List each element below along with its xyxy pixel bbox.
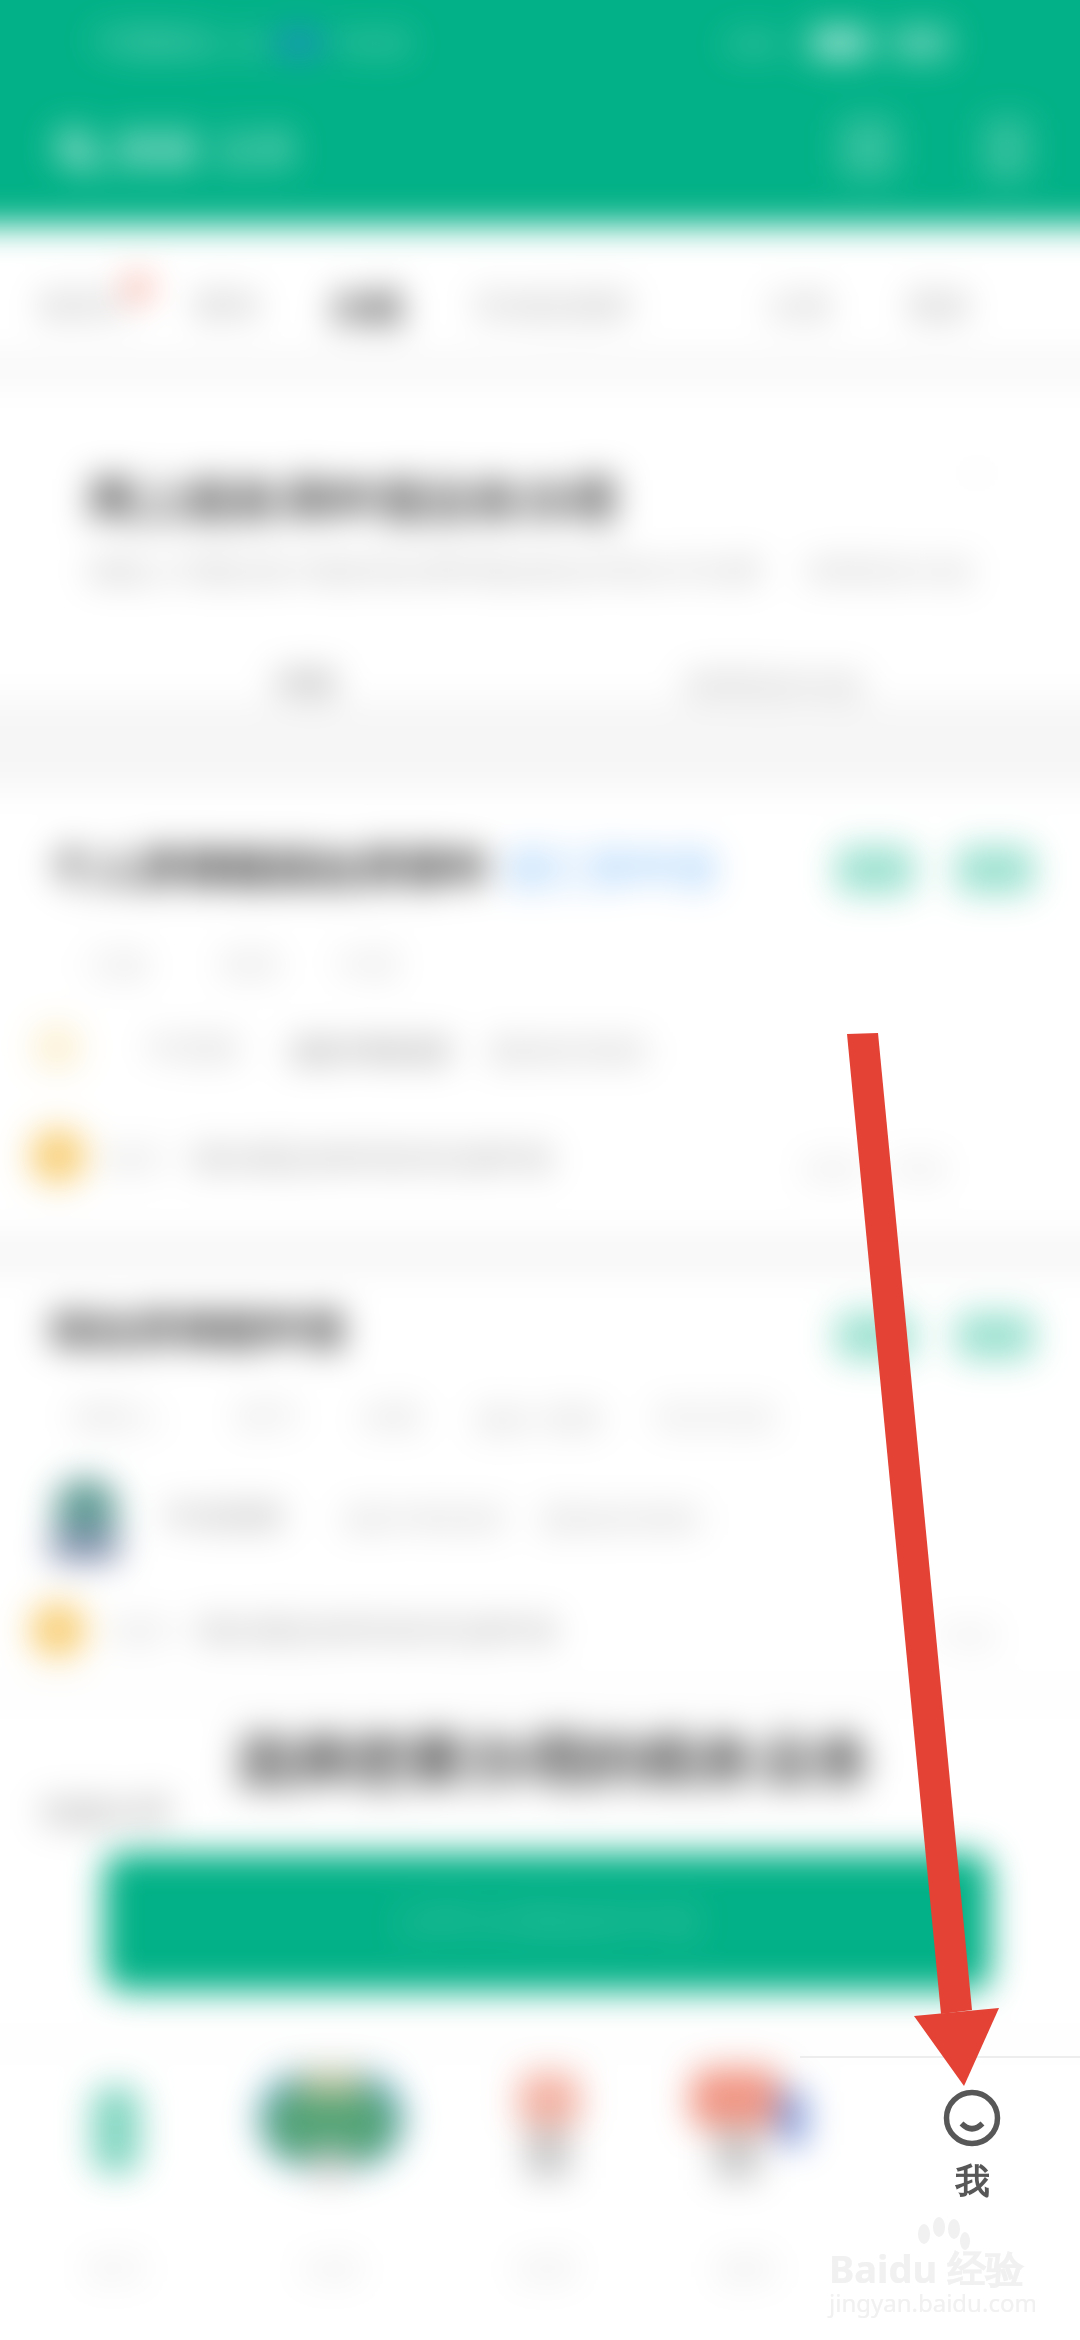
staticText: 编辑	[849, 1320, 901, 1353]
button[interactable]: 查看 详情	[796, 1142, 952, 1195]
button[interactable]: 更多	[902, 280, 978, 332]
staticText: 详情	[274, 664, 336, 703]
staticText: 快捷办理	[42, 1792, 170, 1832]
staticText: 2021年03月	[290, 1030, 453, 1071]
staticText: 提交	[969, 1320, 1021, 1353]
staticText: 业务	[215, 124, 299, 177]
staticText: 编辑	[849, 854, 901, 887]
button[interactable]: 详情	[268, 658, 342, 709]
button[interactable]	[648, 2045, 864, 2305]
staticText: 首页汇	[38, 286, 134, 326]
button[interactable]: 我	[864, 2046, 1080, 2246]
staticText: 10:25	[333, 22, 410, 63]
staticText: 度汇算申报	[506, 843, 716, 896]
staticText: 更多	[908, 286, 972, 326]
button[interactable]: 立即办理税务申报	[104, 1853, 990, 1991]
staticText: 网上税务局申报业务办理	[88, 472, 616, 532]
button[interactable]	[864, 2045, 1080, 2305]
staticText: 个人所得税综合所得年	[50, 842, 490, 897]
button[interactable]	[0, 2045, 216, 2305]
staticText: 办税	[330, 286, 402, 331]
button[interactable]: 查询	[188, 280, 264, 332]
button[interactable]	[216, 2045, 432, 2305]
button[interactable]: 编辑	[836, 846, 914, 894]
staticText: 申报期限	[165, 1498, 285, 1536]
staticText: 选择您要办理的税务业务	[234, 1725, 872, 1798]
staticText: 详情	[936, 1618, 996, 1656]
button[interactable]	[432, 2045, 648, 2305]
button[interactable]: 提交	[956, 1312, 1034, 1360]
staticText: 搜索	[115, 124, 199, 177]
button[interactable]: 查看更多信息	[678, 660, 870, 710]
button[interactable]: 公告	[762, 280, 838, 332]
button[interactable]: 办税	[324, 280, 408, 337]
staticText: 我	[955, 2160, 989, 2202]
staticText: 查看 详情	[802, 1148, 946, 1189]
staticText: 中国移动	[95, 24, 215, 62]
staticText: 互动交流区	[474, 286, 634, 326]
button[interactable]: 编辑	[836, 1312, 914, 1360]
button[interactable]: 详情	[930, 1612, 1002, 1662]
staticText: 综合所得税申报	[50, 1305, 344, 1358]
staticText: jingyan.baidu.com	[829, 2286, 1037, 2319]
button[interactable]: 提交	[956, 846, 1034, 894]
button[interactable]: 首页汇	[32, 280, 140, 332]
staticText: 提交	[969, 854, 1021, 887]
staticText: Baidu 经验	[829, 2242, 1023, 2294]
button[interactable]: 互动交流区	[468, 280, 640, 332]
